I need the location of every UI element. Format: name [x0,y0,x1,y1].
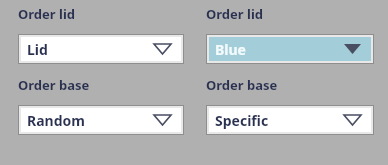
staticText: Lid [27,40,48,59]
button[interactable]: Lid [18,34,184,64]
button[interactable]: Random [18,105,184,135]
staticText: Order lid [18,5,75,23]
staticText: Specific [215,111,269,130]
staticText: Order base [18,76,90,94]
staticText: Blue [215,40,246,59]
staticText: Order base [206,76,278,94]
button[interactable]: Specific [206,105,374,135]
button[interactable]: Blue [206,34,374,64]
staticText: Random [27,111,85,130]
staticText: Order lid [206,5,263,23]
